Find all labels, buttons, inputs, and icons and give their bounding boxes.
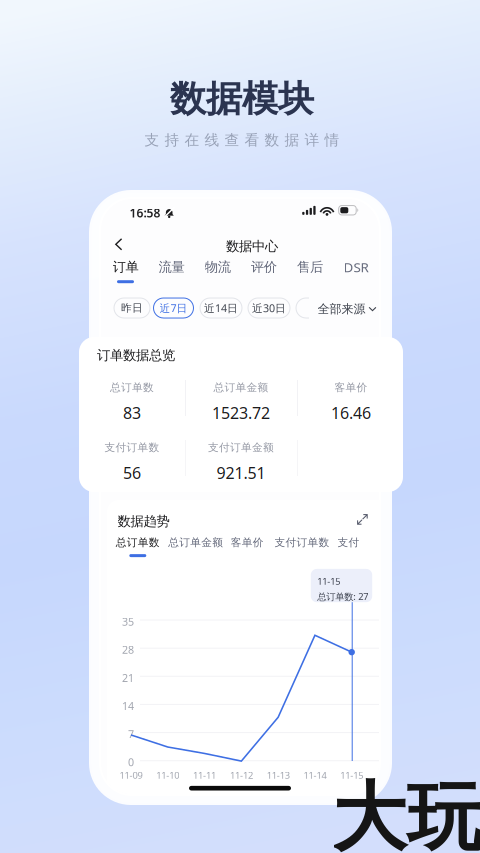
staticText: 11-14 (303, 769, 326, 781)
staticText: 总订单数: 27 (317, 590, 368, 603)
staticText: 订单数据总览 (97, 347, 175, 363)
staticText: 16.46 (331, 402, 371, 423)
staticText: 支付订单数 (274, 536, 329, 549)
button[interactable]: 售后 (287, 257, 333, 285)
button[interactable]: 近14日 (200, 298, 242, 318)
button[interactable]: 流量 (149, 257, 195, 285)
staticText: DSR (343, 258, 368, 276)
staticText: 支付订单金额 (208, 441, 274, 454)
button[interactable]: 近7日 (153, 298, 193, 318)
button[interactable]: 昨日 (114, 298, 150, 318)
staticText: 大玩客 (332, 772, 480, 853)
button[interactable] (296, 298, 338, 318)
staticText: 总订单金额 (213, 381, 268, 394)
staticText: 11-10 (156, 769, 179, 781)
staticText: 16:58 (129, 205, 160, 221)
staticText: 支付 (337, 536, 359, 549)
staticText: 物流 (205, 259, 231, 275)
button[interactable]: 近30日 (248, 298, 290, 318)
staticText: 11-11 (193, 769, 216, 781)
staticText: 11-15 (340, 769, 363, 781)
staticText: 21 (122, 671, 134, 685)
button[interactable]: 支付 (337, 536, 359, 557)
staticText: 支持在线查看数据详情 (144, 131, 339, 149)
staticText: 28 (122, 643, 134, 657)
button[interactable]: 物流 (195, 257, 241, 285)
staticText: 56 (123, 462, 141, 483)
button[interactable]: 订单 (102, 257, 148, 285)
staticText: 1523.72 (212, 402, 270, 423)
staticText: 支付订单数 (104, 441, 159, 454)
staticText: 14 (122, 699, 134, 713)
staticText: 评价 (251, 259, 277, 275)
button[interactable]: 全部来源 (317, 299, 375, 319)
staticText: 921.51 (216, 462, 265, 483)
staticText: 流量 (159, 259, 185, 275)
button[interactable]: 支付订单数 (274, 536, 329, 557)
staticText: 35 (122, 614, 134, 629)
button[interactable]: 评价 (241, 257, 287, 285)
button[interactable]: 总订单金额 (168, 536, 223, 557)
staticText: 昨日 (121, 301, 143, 314)
button[interactable]: DSR (333, 257, 379, 285)
staticText: 总订单数 (110, 381, 154, 394)
staticText: 11-09 (119, 769, 142, 781)
staticText: 数据模块 (170, 77, 314, 121)
staticText: 数据趋势 (117, 513, 169, 529)
staticText: 近14日 (204, 301, 238, 315)
staticText: 83 (123, 402, 141, 423)
staticText: 售后 (297, 259, 323, 275)
button[interactable]: 客单价 (231, 536, 264, 557)
staticText: 订单 (112, 259, 138, 275)
button[interactable]: Expand chart (352, 509, 373, 530)
staticText: 客单价 (334, 381, 367, 394)
staticText: 7 (128, 727, 134, 741)
staticText: 全部来源 (317, 302, 365, 316)
button[interactable]: 总订单数 (116, 536, 160, 557)
staticText: 近7日 (159, 301, 187, 315)
staticText: 11-15 (317, 575, 340, 587)
staticText: 客单价 (231, 536, 264, 549)
button[interactable]: Back (108, 231, 130, 258)
staticText: 11-13 (267, 769, 290, 781)
staticText: 0 (128, 755, 134, 769)
staticText: 总订单金额 (168, 536, 223, 549)
staticText: 总订单数 (116, 536, 160, 549)
staticText: 数据中心 (226, 238, 278, 254)
staticText: 近30日 (252, 301, 286, 315)
staticText: 11-12 (230, 769, 253, 781)
